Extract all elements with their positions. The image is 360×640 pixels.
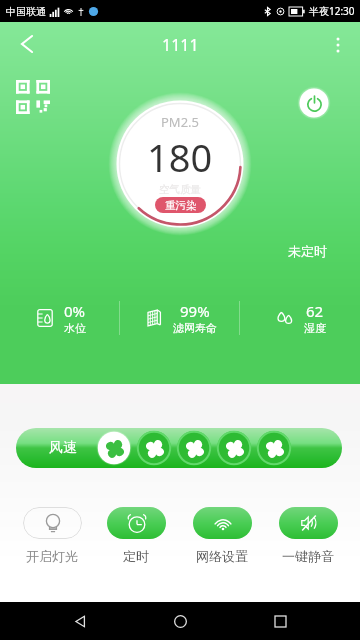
button[interactable] — [23, 507, 82, 539]
button[interactable] — [107, 507, 166, 539]
button[interactable]: Power — [300, 89, 329, 118]
staticText: PM2.5 — [161, 113, 200, 131]
staticText: 空气质量 — [159, 183, 201, 196]
staticText: 风速 — [49, 439, 77, 457]
staticText: 半夜12:30 — [309, 4, 355, 18]
button[interactable]: Fan speed 3 — [179, 433, 210, 464]
staticText: 180 — [147, 131, 213, 183]
staticText: 湿度 — [304, 321, 326, 335]
staticText: 62 — [306, 301, 324, 321]
staticText: 未定时 — [288, 243, 327, 259]
button[interactable]: Scan QR code — [16, 80, 50, 112]
button[interactable]: Home — [160, 602, 200, 640]
button[interactable] — [279, 507, 338, 539]
button[interactable] — [193, 507, 252, 539]
button[interactable]: Back — [60, 602, 100, 640]
staticText: 中国联通 — [6, 5, 46, 18]
staticText: 重污染 — [165, 199, 197, 212]
button[interactable]: Fan speed 2 — [139, 433, 170, 464]
staticText: 水位 — [64, 321, 86, 335]
staticText: 滤网寿命 — [173, 321, 217, 335]
staticText: 开启灯光 — [26, 548, 78, 564]
button[interactable]: Back — [5, 22, 49, 66]
button[interactable]: More options — [316, 23, 360, 67]
staticText: 定时 — [123, 548, 149, 564]
button[interactable]: Fan speed 5 — [259, 433, 290, 464]
staticText: 网络设置 — [196, 548, 248, 564]
staticText: 99% — [180, 301, 210, 321]
staticText: 一键静音 — [282, 548, 334, 564]
button[interactable]: Recent apps — [260, 602, 300, 640]
button[interactable]: Fan speed 1 — [99, 433, 130, 464]
staticText: 1111 — [162, 34, 199, 56]
button[interactable]: Fan speed 4 — [219, 433, 250, 464]
staticText: 0% — [64, 301, 86, 321]
